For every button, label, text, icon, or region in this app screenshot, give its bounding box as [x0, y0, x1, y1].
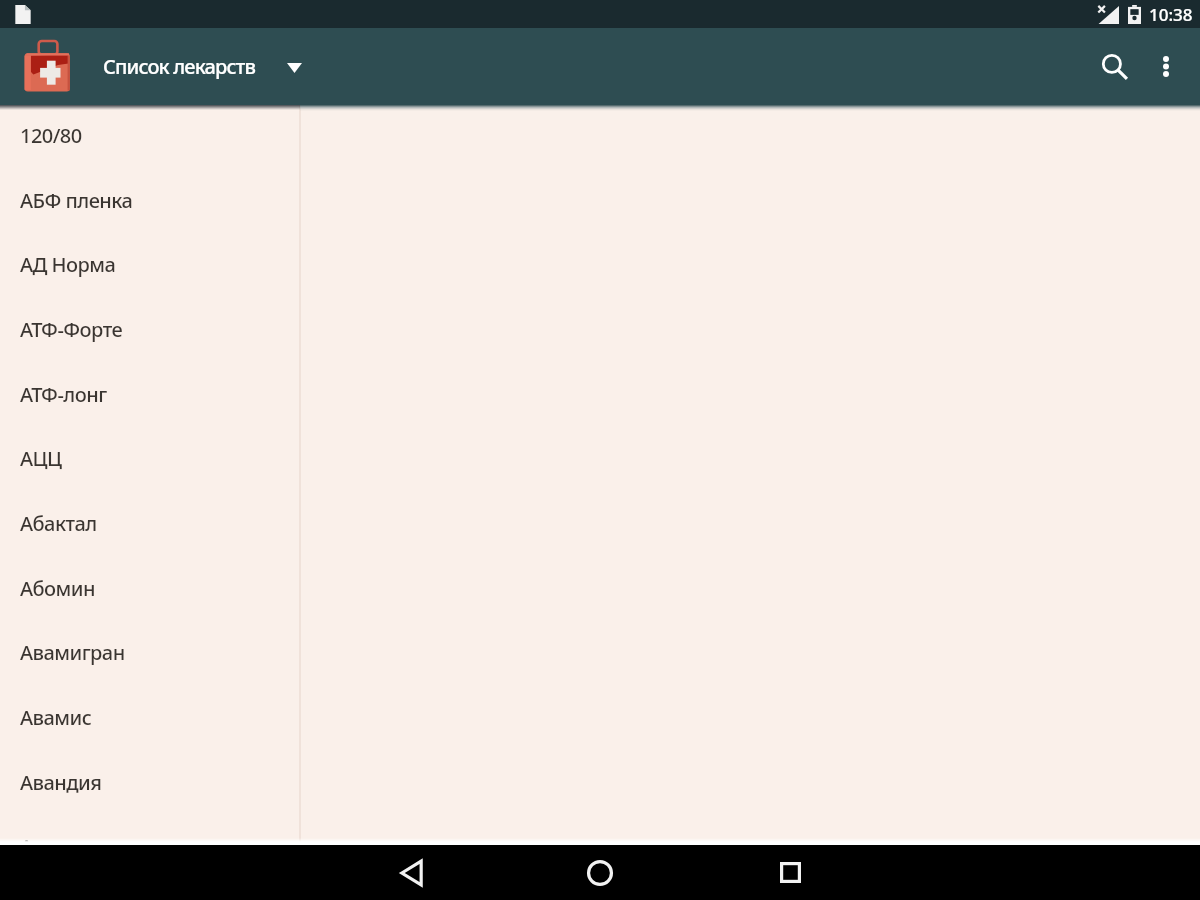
button[interactable]: АБФ пленка: [0, 168, 299, 233]
button[interactable]: Абактал: [0, 491, 299, 556]
staticText: АТФ-Форте: [20, 316, 123, 343]
staticText: Авелокс: [20, 833, 97, 845]
button[interactable]: 120/80: [0, 105, 299, 168]
staticText: 120/80: [20, 122, 82, 149]
staticText: Авамигран: [20, 639, 125, 666]
button[interactable]: Авамис: [0, 685, 299, 750]
button[interactable]: Список лекарств: [103, 28, 302, 105]
staticText: Абактал: [20, 510, 97, 537]
button[interactable]: Recent apps: [750, 845, 830, 900]
staticText: АД Норма: [20, 251, 116, 278]
button[interactable]: АД Норма: [0, 232, 299, 297]
staticText: Список лекарств: [103, 53, 256, 80]
staticText: Авамис: [20, 704, 92, 731]
button[interactable]: АЦЦ: [0, 426, 299, 491]
staticText: АБФ пленка: [20, 187, 133, 214]
staticText: АТФ-лонг: [20, 381, 107, 408]
staticText: Абомин: [20, 575, 95, 602]
button[interactable]: Back: [371, 845, 451, 900]
button[interactable]: АТФ-Форте: [0, 297, 299, 362]
button[interactable]: More options: [1137, 28, 1195, 105]
button[interactable]: Авелокс: [0, 814, 299, 845]
button[interactable]: Абомин: [0, 556, 299, 621]
staticText: АЦЦ: [20, 445, 62, 472]
button[interactable]: Авандия: [0, 750, 299, 815]
button[interactable]: АТФ-лонг: [0, 362, 299, 427]
button[interactable]: Search: [1083, 28, 1147, 105]
staticText: Авандия: [20, 769, 102, 796]
button[interactable]: Open navigation drawer: [0, 28, 85, 105]
button[interactable]: Авамигран: [0, 620, 299, 685]
button[interactable]: Home: [560, 845, 640, 900]
staticText: 10:38: [1149, 3, 1193, 26]
